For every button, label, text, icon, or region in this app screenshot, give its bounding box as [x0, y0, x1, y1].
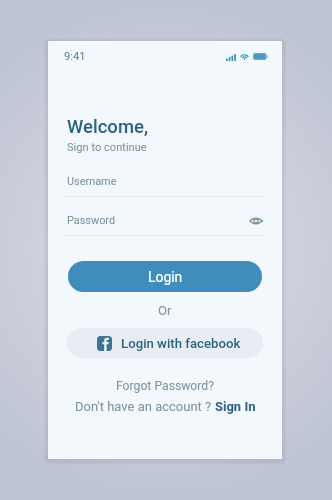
button[interactable]: Login: [68, 261, 262, 292]
staticText: Login: [148, 269, 183, 285]
staticText: 9:41: [64, 50, 86, 63]
button[interactable]: Sign In: [215, 399, 256, 414]
staticText: Login with facebook: [121, 336, 241, 351]
staticText: Username: [67, 175, 117, 188]
staticText: Welcome,: [67, 116, 149, 138]
button[interactable]: Login with facebook: [67, 328, 263, 358]
button[interactable]: Forgot Password?: [116, 379, 214, 393]
staticText: Password: [67, 214, 116, 227]
staticText: Or: [158, 303, 172, 318]
staticText: Sign to continue: [67, 141, 147, 154]
button[interactable]: Show password: [241, 211, 271, 231]
staticText: Don't have an account ?: [75, 399, 215, 414]
